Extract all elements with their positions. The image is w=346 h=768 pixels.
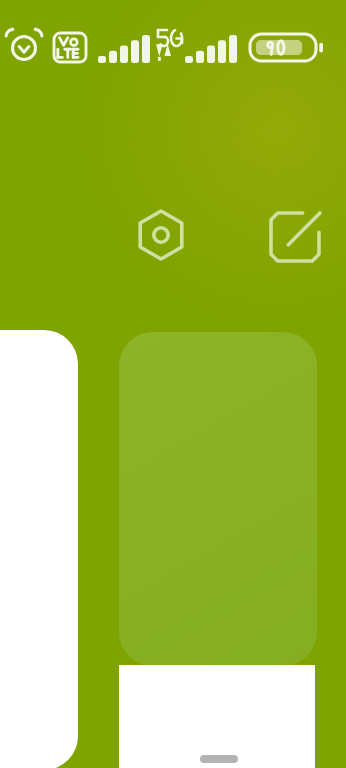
- button[interactable]: [200, 755, 238, 763]
- button[interactable]: Lens: [130, 204, 192, 266]
- button[interactable]: [119, 332, 317, 666]
- button[interactable]: [0, 330, 78, 768]
- button[interactable]: Compose: [264, 206, 326, 268]
